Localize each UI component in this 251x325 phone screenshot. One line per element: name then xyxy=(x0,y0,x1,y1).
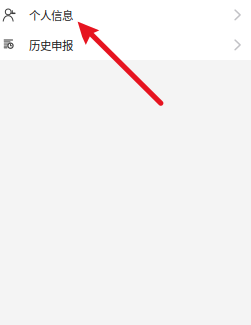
staticText: 个人信息 xyxy=(29,7,73,23)
button[interactable]: 个人信息 xyxy=(0,0,251,30)
staticText: 历史申报 xyxy=(29,37,73,53)
button[interactable]: 历史申报 xyxy=(0,30,251,60)
